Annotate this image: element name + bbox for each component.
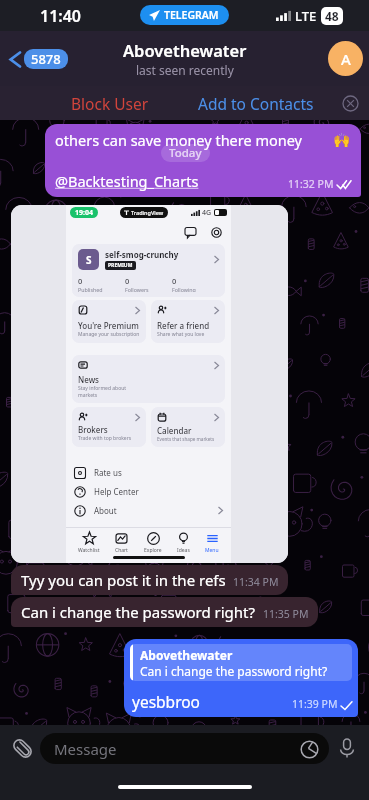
other: Back	[9, 51, 20, 68]
button[interactable]: Abovethewater	[124, 639, 358, 717]
button[interactable]: Calendar	[151, 407, 225, 447]
button[interactable]: S	[72, 244, 225, 297]
staticText: Share what you love	[157, 331, 205, 338]
button[interactable]: Ideas	[174, 532, 193, 554]
button[interactable]: Menu	[202, 532, 222, 554]
button[interactable]: Back	[5, 45, 72, 73]
staticText: Help Center	[94, 486, 139, 497]
staticText: Abovethewater	[140, 647, 233, 663]
staticText: Tyy you can post it in the refs	[21, 570, 226, 590]
staticText: self-smog-crunchy	[105, 249, 179, 260]
staticText: 19:04	[75, 208, 93, 217]
staticText: Followers	[125, 286, 149, 292]
button[interactable]: Settings	[209, 225, 223, 239]
staticText: Can i change the password right?	[140, 663, 328, 679]
button[interactable]: Refer a friend	[151, 300, 225, 343]
staticText: Stay informed about markets	[78, 385, 127, 398]
staticText: Brokers	[78, 424, 108, 435]
staticText: Calendar	[157, 425, 192, 436]
staticText: 4G	[202, 208, 212, 218]
staticText: Manage your subscription	[78, 331, 140, 338]
staticText: About	[94, 505, 117, 516]
staticText: TELEGRAM	[164, 8, 219, 22]
staticText: You're Premium	[78, 320, 139, 331]
staticText: S	[86, 253, 92, 267]
button[interactable]: Block User	[0, 86, 219, 120]
staticText: 11:39 PM	[292, 697, 338, 711]
button[interactable]: Brokers	[72, 407, 146, 447]
staticText: 48	[325, 8, 339, 24]
staticText: 0	[172, 276, 177, 286]
staticText: Menu	[205, 547, 219, 554]
staticText: Chart	[115, 547, 128, 554]
button[interactable]: Dismiss	[337, 90, 363, 116]
staticText: Watchlist	[78, 547, 100, 554]
staticText: Abovethewater	[123, 39, 247, 61]
button[interactable]: Add to Contacts	[192, 86, 320, 120]
button[interactable]: Chart	[112, 532, 131, 554]
button[interactable]: Can i change the password right?	[11, 597, 318, 627]
staticText: Refer a friend	[157, 320, 210, 331]
staticText: 5878	[31, 50, 61, 68]
staticText: 0	[125, 276, 130, 286]
staticText: 11:34 PM	[233, 575, 279, 589]
staticText: 11:35 PM	[263, 607, 309, 621]
staticText: TradingView	[131, 209, 164, 216]
button[interactable]: Voice message	[329, 730, 365, 766]
staticText: Can i change the password right?	[21, 602, 256, 622]
staticText: Published	[78, 286, 103, 292]
staticText: A	[341, 49, 351, 69]
staticText: 🙌	[333, 132, 351, 148]
staticText: Ideas	[177, 547, 190, 554]
staticText: 11:32 PM	[288, 177, 334, 191]
button[interactable]: Attach	[4, 730, 40, 766]
button[interactable]: Tyy you can post it in the refs	[11, 565, 288, 595]
staticText: Explore	[144, 547, 162, 554]
button[interactable]: You're Premium	[72, 300, 146, 343]
button[interactable]: About	[66, 501, 231, 520]
staticText: Trade with top brokers	[78, 435, 132, 442]
button[interactable]: News	[72, 355, 225, 403]
staticText: Events that shape markets	[157, 436, 215, 442]
button[interactable]: Explore	[141, 532, 165, 554]
staticText: Add to Contacts	[198, 93, 314, 114]
button[interactable]: others can save money there money	[45, 124, 361, 197]
button[interactable]: Today	[161, 144, 210, 162]
staticText: LTE	[295, 7, 317, 25]
staticText: Today	[169, 145, 202, 161]
staticText: PREMIUM	[108, 262, 133, 269]
staticText: News	[78, 374, 99, 385]
button[interactable]: Watchlist	[75, 532, 103, 554]
staticText: yesbbroo	[132, 691, 200, 712]
staticText: Message	[54, 739, 117, 759]
staticText: Block User	[71, 93, 149, 114]
staticText: @Backtesting_Charts	[55, 171, 199, 191]
staticText: Rate us	[94, 467, 122, 478]
button[interactable]: Profile	[328, 41, 363, 76]
staticText: 0	[78, 276, 83, 286]
button[interactable]: Stickers	[297, 737, 321, 761]
button[interactable]: Messages	[183, 225, 197, 239]
button[interactable]: Help Center	[66, 482, 231, 501]
staticText: last seen recently	[136, 62, 234, 78]
button[interactable]: Rate us	[66, 463, 231, 482]
staticText: others can save money there money	[55, 130, 303, 150]
staticText: Following	[172, 286, 196, 292]
button[interactable]: Message	[40, 733, 329, 764]
staticText: 11:40	[40, 5, 82, 27]
button[interactable]: 19:04	[11, 205, 288, 563]
